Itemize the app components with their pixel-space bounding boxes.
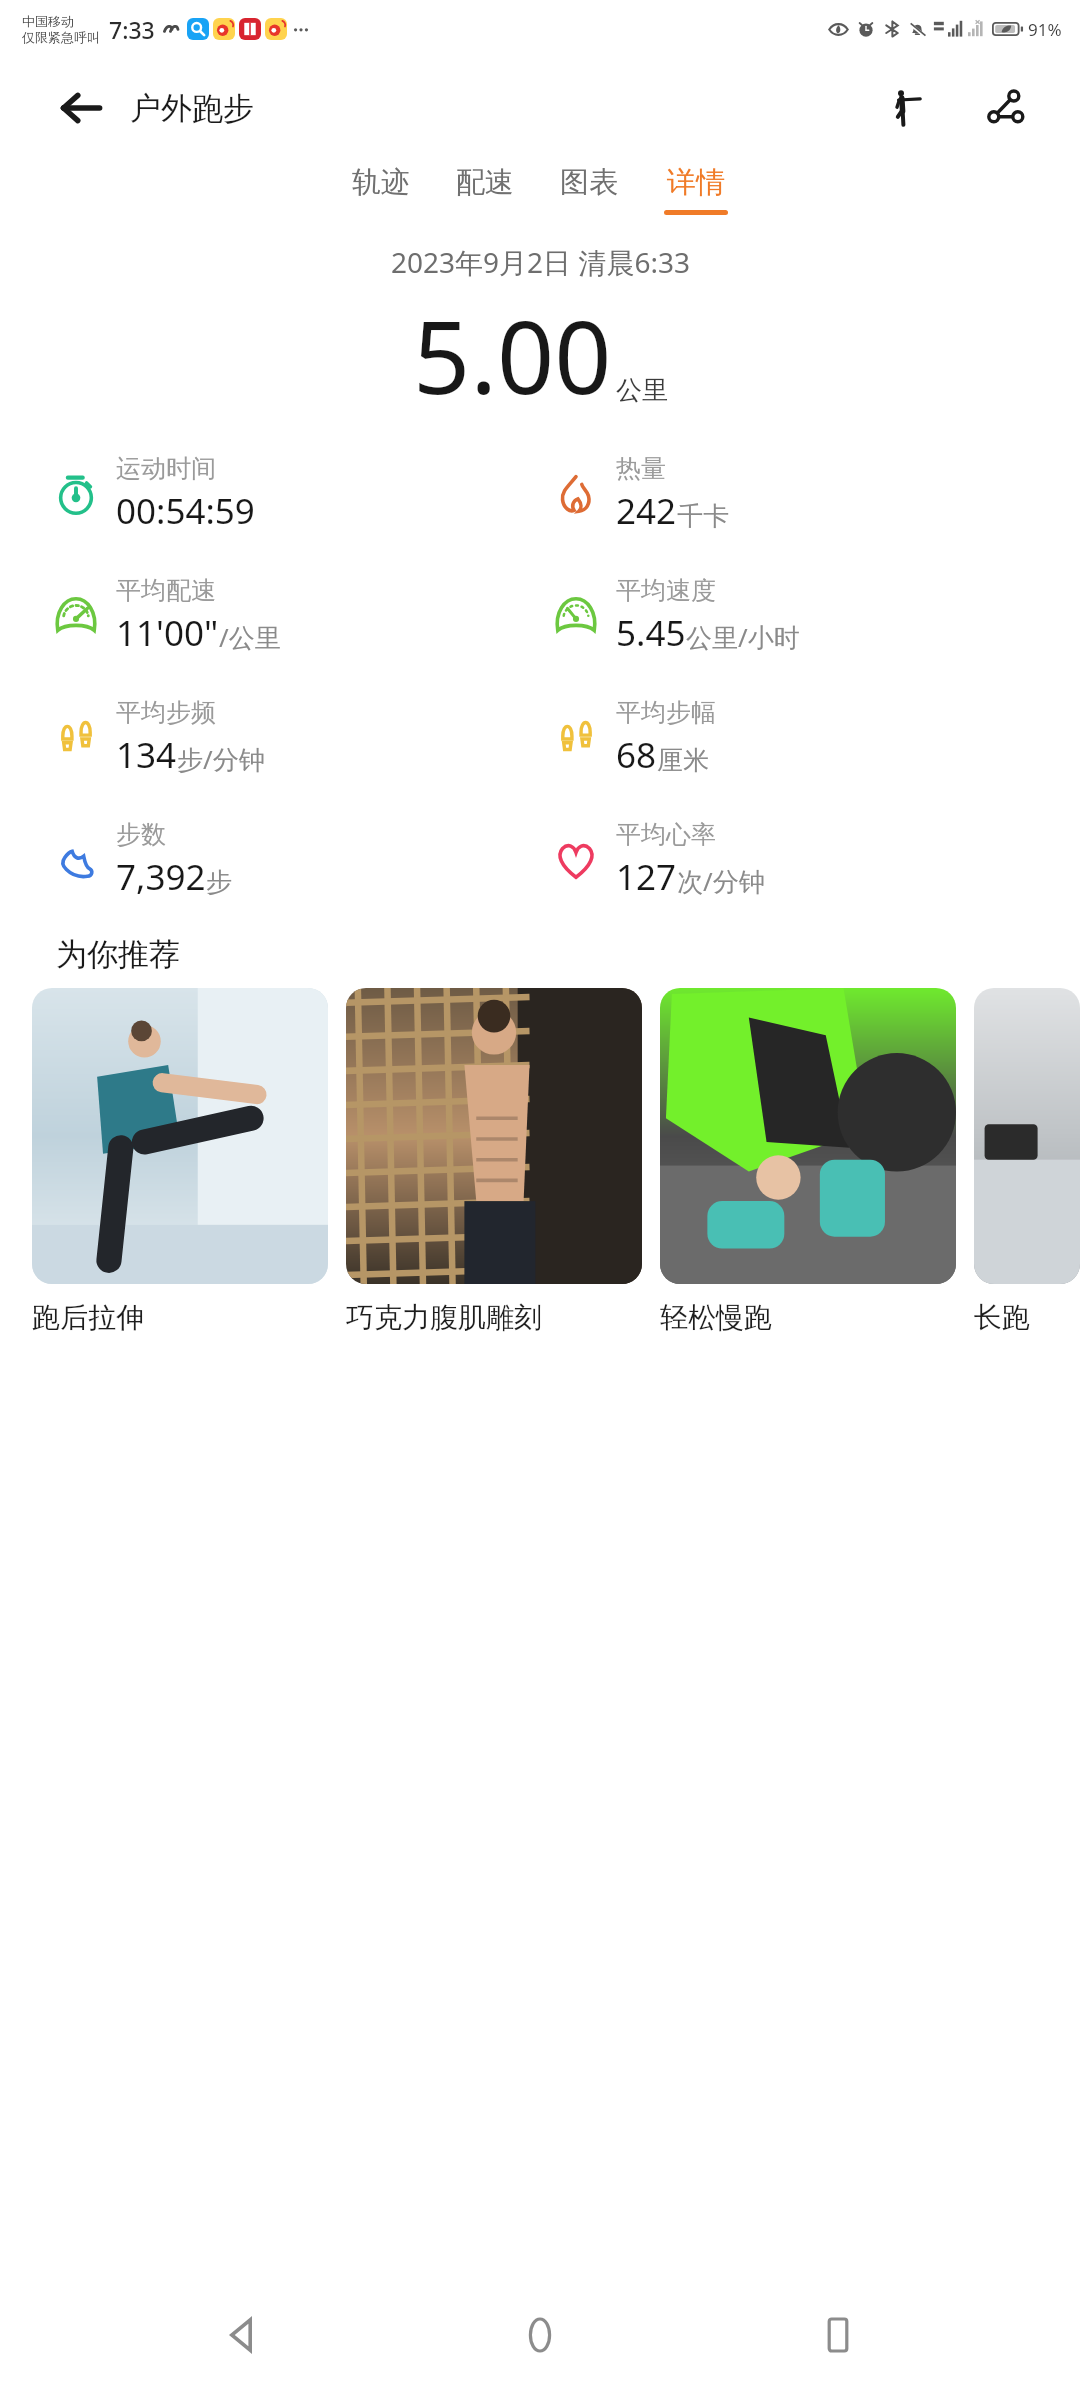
staticText: 11'00": [116, 609, 219, 657]
staticText: 7:33: [109, 14, 155, 45]
button[interactable]: 平均配速: [52, 575, 540, 657]
button[interactable]: 详情: [641, 158, 751, 221]
staticText: 为你推荐: [56, 935, 180, 974]
button[interactable]: 步数: [52, 819, 540, 901]
button[interactable]: 平均步频: [52, 697, 540, 779]
button[interactable]: 巧克力腹肌雕刻: [346, 988, 642, 1335]
button[interactable]: 轨迹: [329, 158, 433, 221]
staticText: 平均配速: [116, 575, 216, 606]
staticText: 步: [206, 866, 232, 899]
staticText: 步/分钟: [177, 741, 265, 777]
staticText: /公里: [219, 619, 281, 655]
staticText: 户外跑步: [130, 89, 254, 128]
staticText: 中国移动: [22, 13, 74, 29]
button[interactable]: 长跑: [974, 988, 1080, 1335]
button[interactable]: 配速: [433, 158, 537, 221]
staticText: 2023年9月2日 清晨6:33: [391, 243, 690, 281]
staticText: 跑后拉伸: [32, 1300, 144, 1335]
button[interactable]: 热量: [552, 453, 1080, 535]
button[interactable]: 图表: [537, 158, 641, 221]
button[interactable]: 轻松慢跑: [660, 988, 956, 1335]
staticText: 127: [616, 853, 677, 901]
staticText: 公里: [616, 374, 668, 407]
staticText: 图表: [560, 164, 618, 201]
staticText: 运动时间: [116, 453, 216, 484]
staticText: 轻松慢跑: [660, 1300, 772, 1335]
staticText: 134: [116, 731, 177, 779]
staticText: 步数: [116, 819, 166, 850]
button[interactable]: 平均心率: [552, 819, 1080, 901]
staticText: 厘米: [657, 744, 709, 777]
staticText: 平均步频: [116, 697, 216, 728]
button[interactable]: Share: [976, 79, 1034, 137]
staticText: 千卡: [677, 500, 729, 533]
button[interactable]: 跑后拉伸: [32, 988, 328, 1335]
staticText: 公里/小时: [686, 619, 800, 655]
staticText: 仅限紧急呼叫: [22, 29, 100, 45]
button[interactable]: Back: [56, 82, 108, 134]
staticText: 242: [616, 487, 677, 535]
staticText: 5.00: [413, 287, 612, 423]
staticText: 热量: [616, 453, 666, 484]
button[interactable]: Running data: [876, 79, 934, 137]
staticText: 00:54:59: [116, 487, 255, 535]
staticText: 配速: [456, 164, 514, 201]
staticText: 平均心率: [616, 819, 716, 850]
staticText: 轨迹: [352, 164, 410, 201]
button[interactable]: Back: [188, 2280, 298, 2390]
staticText: 7,392: [116, 853, 206, 901]
staticText: 平均速度: [616, 575, 716, 606]
button[interactable]: 运动时间: [52, 453, 540, 535]
staticText: 平均步幅: [616, 697, 716, 728]
staticText: 91%: [1028, 18, 1062, 41]
staticText: 次/分钟: [677, 863, 765, 899]
button[interactable]: 平均步幅: [552, 697, 1080, 779]
staticText: 长跑: [974, 1300, 1030, 1335]
staticText: 详情: [667, 164, 725, 201]
button[interactable]: Home: [485, 2280, 595, 2390]
button[interactable]: Recents: [783, 2280, 893, 2390]
staticText: 68: [616, 731, 657, 779]
staticText: 巧克力腹肌雕刻: [346, 1300, 542, 1335]
staticText: 5.45: [616, 609, 686, 657]
button[interactable]: 平均速度: [552, 575, 1080, 657]
